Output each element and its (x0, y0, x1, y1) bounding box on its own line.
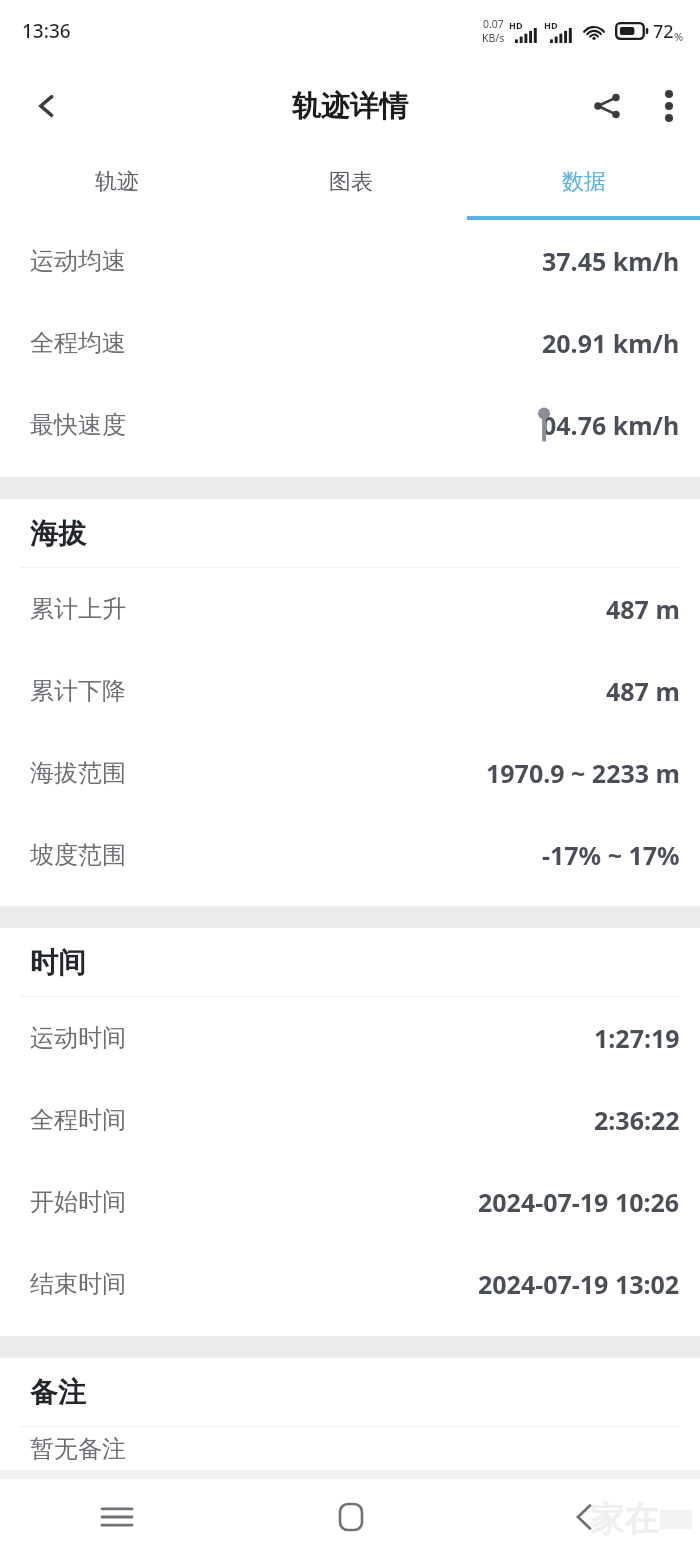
staticText: 数据 (562, 168, 606, 196)
staticText: 13:36 (22, 18, 71, 44)
button[interactable]: 坡度范围 (0, 814, 700, 896)
staticText: 2:36:22 (594, 1103, 680, 1137)
staticText: 全程时间 (30, 1105, 126, 1135)
button[interactable]: 全程时间 (0, 1079, 700, 1161)
staticText: 72 (653, 19, 674, 44)
staticText: HD (509, 19, 523, 31)
staticText: 坡度范围 (30, 840, 126, 870)
staticText: 图表 (329, 168, 373, 196)
staticText: 最快速度 (30, 410, 126, 440)
staticText: 1970.9 ~ 2233 m (486, 756, 680, 790)
staticText: 487 m (606, 592, 680, 626)
button[interactable]: 结束时间 (0, 1243, 700, 1325)
staticText: 2024-07-19 13:02 (478, 1267, 680, 1301)
staticText: 20.91 km/h (542, 326, 680, 360)
staticText: 暂无备注 (30, 1434, 126, 1464)
staticText: 家在 (590, 1498, 658, 1541)
button[interactable]: 海拔范围 (0, 732, 700, 814)
button[interactable]: Recents (0, 1479, 234, 1555)
staticText: 2024-07-19 10:26 (478, 1185, 680, 1219)
staticText: 结束时间 (30, 1269, 126, 1299)
staticText: 海拔 (30, 516, 86, 551)
button[interactable]: 最快速度 (0, 384, 700, 466)
button[interactable]: Home (234, 1479, 467, 1555)
staticText: KB/s (482, 31, 505, 45)
staticText: 0.07 (483, 17, 504, 31)
button[interactable]: 全程均速 (0, 302, 700, 384)
button[interactable]: Back (14, 73, 80, 139)
staticText: 04.76 km/h (542, 408, 680, 442)
staticText: 487 m (606, 674, 680, 708)
staticText: 累计下降 (30, 676, 126, 706)
staticText: 累计上升 (30, 594, 126, 624)
staticText: 开始时间 (30, 1187, 126, 1217)
button[interactable]: Share (576, 75, 638, 137)
staticText: HD (544, 19, 558, 31)
button[interactable]: 运动时间 (0, 997, 700, 1079)
staticText: 运动均速 (30, 246, 126, 276)
staticText: 全程均速 (30, 328, 126, 358)
button[interactable]: 数据 (467, 150, 700, 220)
button[interactable]: 暂无备注 (0, 1427, 700, 1470)
button[interactable]: Back (467, 1479, 700, 1555)
button[interactable]: 累计上升 (0, 568, 700, 650)
staticText: 时间 (30, 945, 86, 980)
button[interactable]: More options (638, 75, 700, 137)
button[interactable]: 累计下降 (0, 650, 700, 732)
staticText: 37.45 km/h (542, 244, 680, 278)
staticText: 轨迹 (95, 168, 139, 196)
button[interactable]: 运动均速 (0, 220, 700, 302)
button[interactable]: 轨迹 (0, 150, 234, 220)
button[interactable]: 开始时间 (0, 1161, 700, 1243)
staticText: -17% ~ 17% (542, 838, 680, 872)
staticText: 1:27:19 (594, 1021, 680, 1055)
staticText: 轨迹详情 (292, 88, 408, 125)
staticText: 备注 (30, 1375, 86, 1410)
staticText: 海拔范围 (30, 758, 126, 788)
button[interactable]: 图表 (234, 150, 467, 220)
staticText: 运动时间 (30, 1023, 126, 1053)
staticText: % (674, 29, 684, 44)
